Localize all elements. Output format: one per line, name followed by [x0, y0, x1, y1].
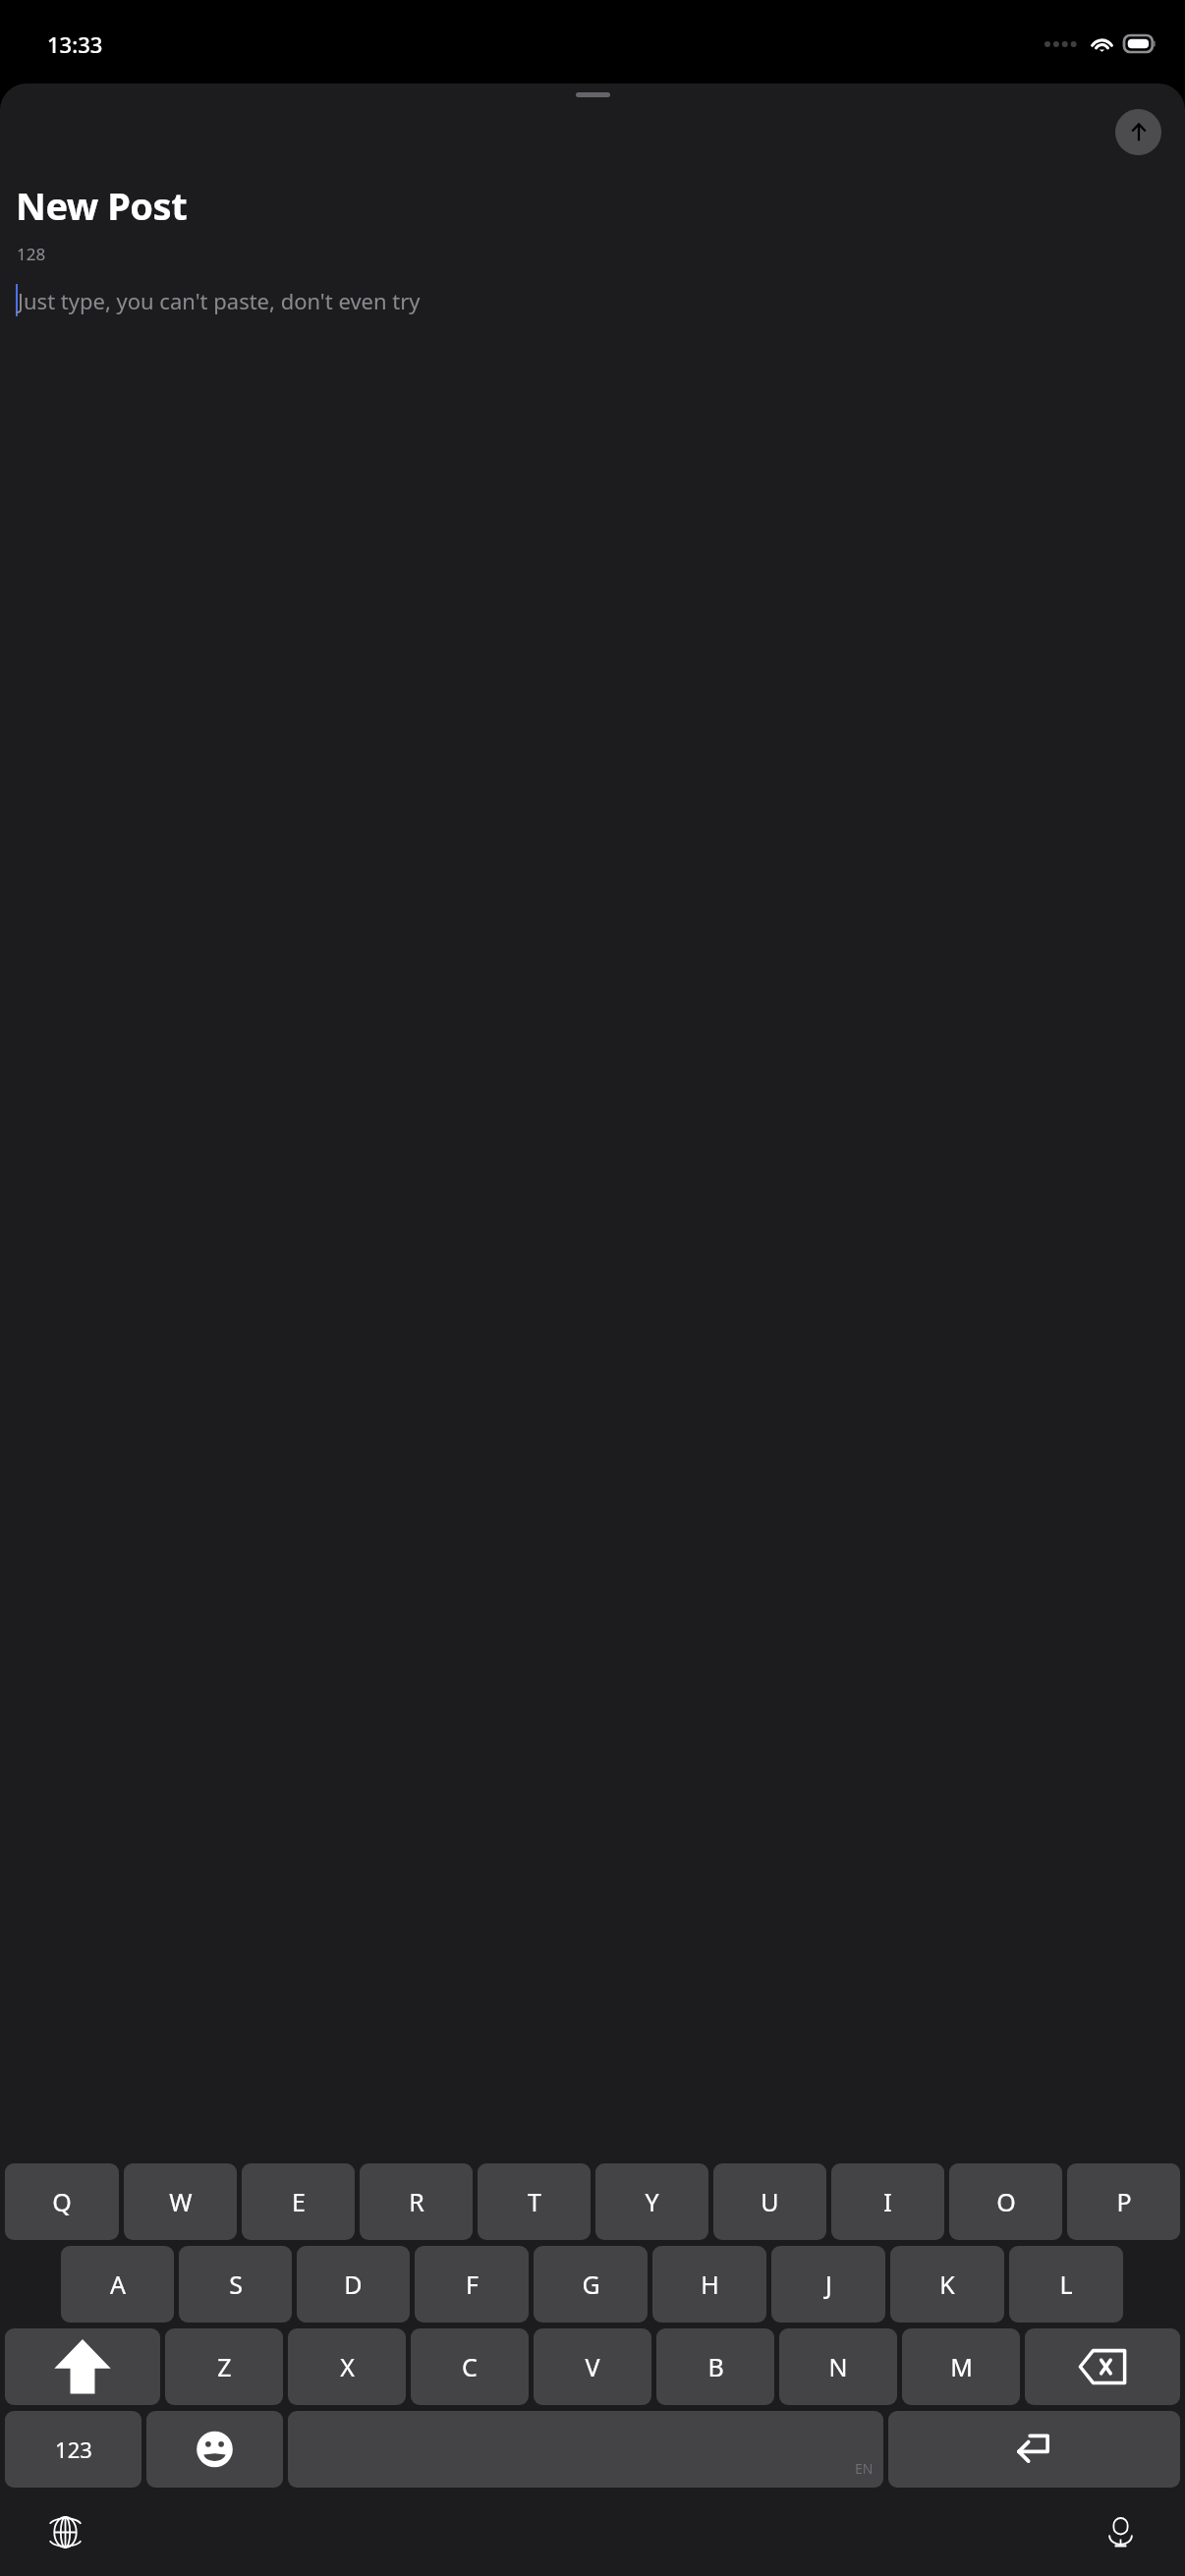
button[interactable]: N: [779, 2328, 897, 2405]
staticText: X: [340, 2350, 355, 2383]
staticText: A: [110, 2268, 126, 2301]
staticText: W: [169, 2185, 193, 2218]
staticText: P: [1116, 2185, 1132, 2218]
staticText: EN: [855, 2459, 874, 2478]
staticText: K: [939, 2268, 955, 2301]
staticText: I: [883, 2185, 892, 2218]
button[interactable]: W: [124, 2163, 237, 2240]
button[interactable]: Z: [165, 2328, 283, 2405]
staticText: 128: [17, 243, 46, 265]
button[interactable]: Post: [1115, 109, 1161, 155]
button[interactable]: Emoji: [146, 2411, 283, 2488]
button[interactable]: Enter: [888, 2411, 1180, 2488]
staticText: T: [528, 2185, 541, 2218]
staticText: M: [950, 2350, 973, 2383]
staticText: B: [707, 2350, 724, 2383]
staticText: F: [466, 2268, 479, 2301]
staticText: E: [292, 2185, 306, 2218]
button[interactable]: Q: [5, 2163, 119, 2240]
staticText: Q: [52, 2185, 72, 2218]
staticText: 13:33: [47, 29, 103, 59]
staticText: C: [462, 2350, 478, 2383]
staticText: 123: [55, 2435, 92, 2464]
staticText: J: [825, 2268, 832, 2301]
staticText: L: [1059, 2268, 1073, 2301]
button[interactable]: R: [360, 2163, 473, 2240]
button[interactable]: E: [242, 2163, 355, 2240]
button[interactable]: O: [949, 2163, 1062, 2240]
button[interactable]: X: [288, 2328, 406, 2405]
staticText: D: [344, 2268, 363, 2301]
button[interactable]: Change language: [43, 2510, 86, 2553]
staticText: Y: [645, 2185, 659, 2218]
staticText: U: [761, 2185, 779, 2218]
staticText: Just type, you can't paste, don't even t…: [18, 286, 421, 315]
button[interactable]: 123: [5, 2411, 141, 2488]
button[interactable]: V: [534, 2328, 651, 2405]
button[interactable]: K: [890, 2246, 1004, 2323]
button[interactable]: L: [1009, 2246, 1123, 2323]
button[interactable]: C: [411, 2328, 529, 2405]
staticText: H: [701, 2268, 719, 2301]
button[interactable]: S: [179, 2246, 292, 2323]
staticText: V: [585, 2350, 600, 2383]
button[interactable]: G: [534, 2246, 648, 2323]
button[interactable]: B: [656, 2328, 774, 2405]
button[interactable]: I: [831, 2163, 944, 2240]
button[interactable]: M: [902, 2328, 1020, 2405]
staticText: R: [409, 2185, 424, 2218]
button[interactable]: Shift: [5, 2328, 160, 2405]
button[interactable]: D: [297, 2246, 410, 2323]
button[interactable]: Just type, you can't paste, don't even t…: [16, 284, 1185, 316]
button[interactable]: A: [61, 2246, 174, 2323]
button[interactable]: P: [1067, 2163, 1180, 2240]
button[interactable]: T: [478, 2163, 591, 2240]
button[interactable]: Backspace: [1025, 2328, 1180, 2405]
button[interactable]: F: [415, 2246, 529, 2323]
button[interactable]: Voice input: [1099, 2510, 1142, 2553]
button[interactable]: U: [713, 2163, 826, 2240]
button[interactable]: Y: [595, 2163, 708, 2240]
staticText: O: [996, 2185, 1016, 2218]
staticText: New Post: [16, 180, 188, 231]
button[interactable]: J: [771, 2246, 885, 2323]
staticText: Z: [217, 2350, 232, 2383]
staticText: G: [582, 2268, 600, 2301]
button[interactable]: H: [652, 2246, 766, 2323]
staticText: S: [229, 2268, 243, 2301]
staticText: N: [828, 2350, 848, 2383]
